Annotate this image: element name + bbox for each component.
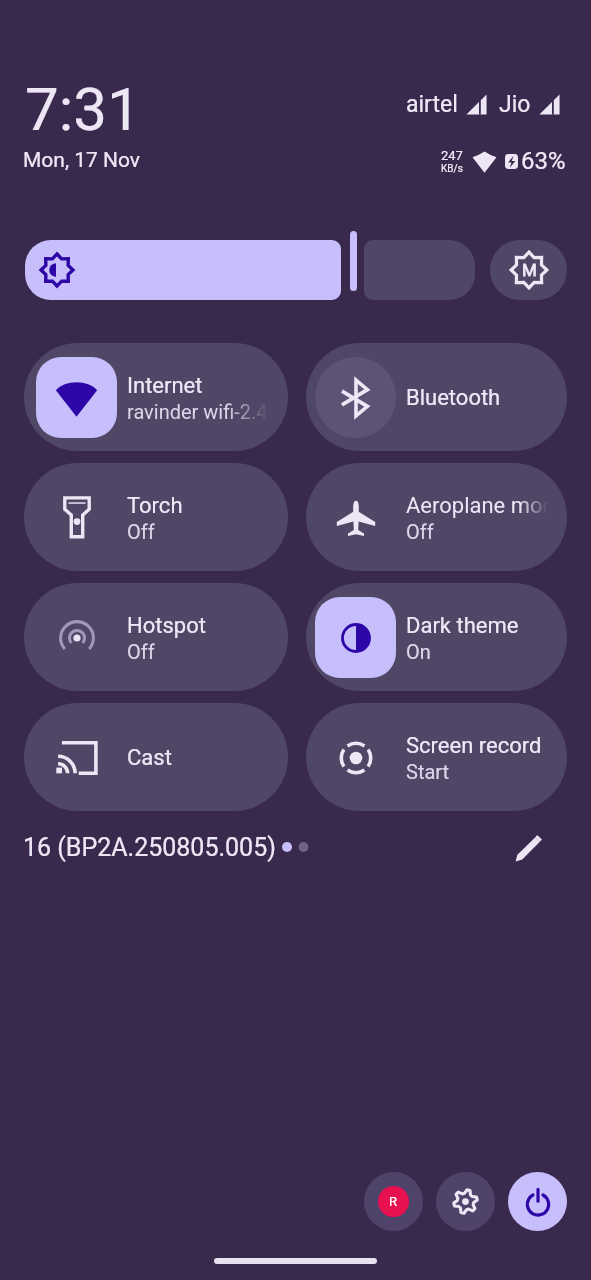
staticText: Hotspot <box>127 613 206 639</box>
staticText: Start <box>406 760 450 783</box>
button[interactable]: Power <box>508 1172 567 1231</box>
staticText: Mon, 17 Nov <box>23 148 141 173</box>
staticText: 7:31 <box>25 74 141 144</box>
staticText: Off <box>127 640 155 663</box>
button[interactable]: Torch <box>24 463 288 571</box>
button[interactable]: Hotspot <box>24 583 288 691</box>
staticText: Aeroplane mode <box>406 493 567 519</box>
staticText: KB/s <box>441 163 463 175</box>
staticText: Bluetooth <box>406 385 501 411</box>
staticText: Cast <box>127 745 172 771</box>
staticText: R <box>389 1194 398 1209</box>
staticText: On <box>406 640 431 663</box>
button[interactable]: Dark theme <box>306 583 567 691</box>
staticText: airtel <box>406 91 458 118</box>
button[interactable]: Aeroplane mode <box>306 463 567 571</box>
staticText: M <box>522 260 537 280</box>
staticText: Off <box>406 520 434 543</box>
staticText: Screen record <box>406 733 542 759</box>
button[interactable]: Edit tiles <box>515 832 545 862</box>
button[interactable]: Adaptive brightness <box>490 240 567 300</box>
button[interactable]: Screen record <box>306 703 567 811</box>
button[interactable]: Internet <box>24 343 288 451</box>
staticText: Internet <box>127 373 203 399</box>
button[interactable]: Brightness <box>25 240 341 300</box>
staticText: ravinder wifi-2.4Gxx <box>127 400 288 423</box>
button[interactable]: Settings <box>436 1172 495 1231</box>
staticText: 247 <box>441 148 463 163</box>
staticText: 63% <box>521 147 566 175</box>
staticText: 16 (BP2A.250805.005) <box>23 833 276 862</box>
button[interactable]: Cast <box>24 703 288 811</box>
staticText: Jio <box>499 91 531 118</box>
staticText: Off <box>127 520 155 543</box>
staticText: Torch <box>127 493 183 519</box>
button[interactable]: Bluetooth <box>306 343 567 451</box>
button[interactable]: User account <box>364 1172 423 1231</box>
staticText: Dark theme <box>406 613 519 639</box>
